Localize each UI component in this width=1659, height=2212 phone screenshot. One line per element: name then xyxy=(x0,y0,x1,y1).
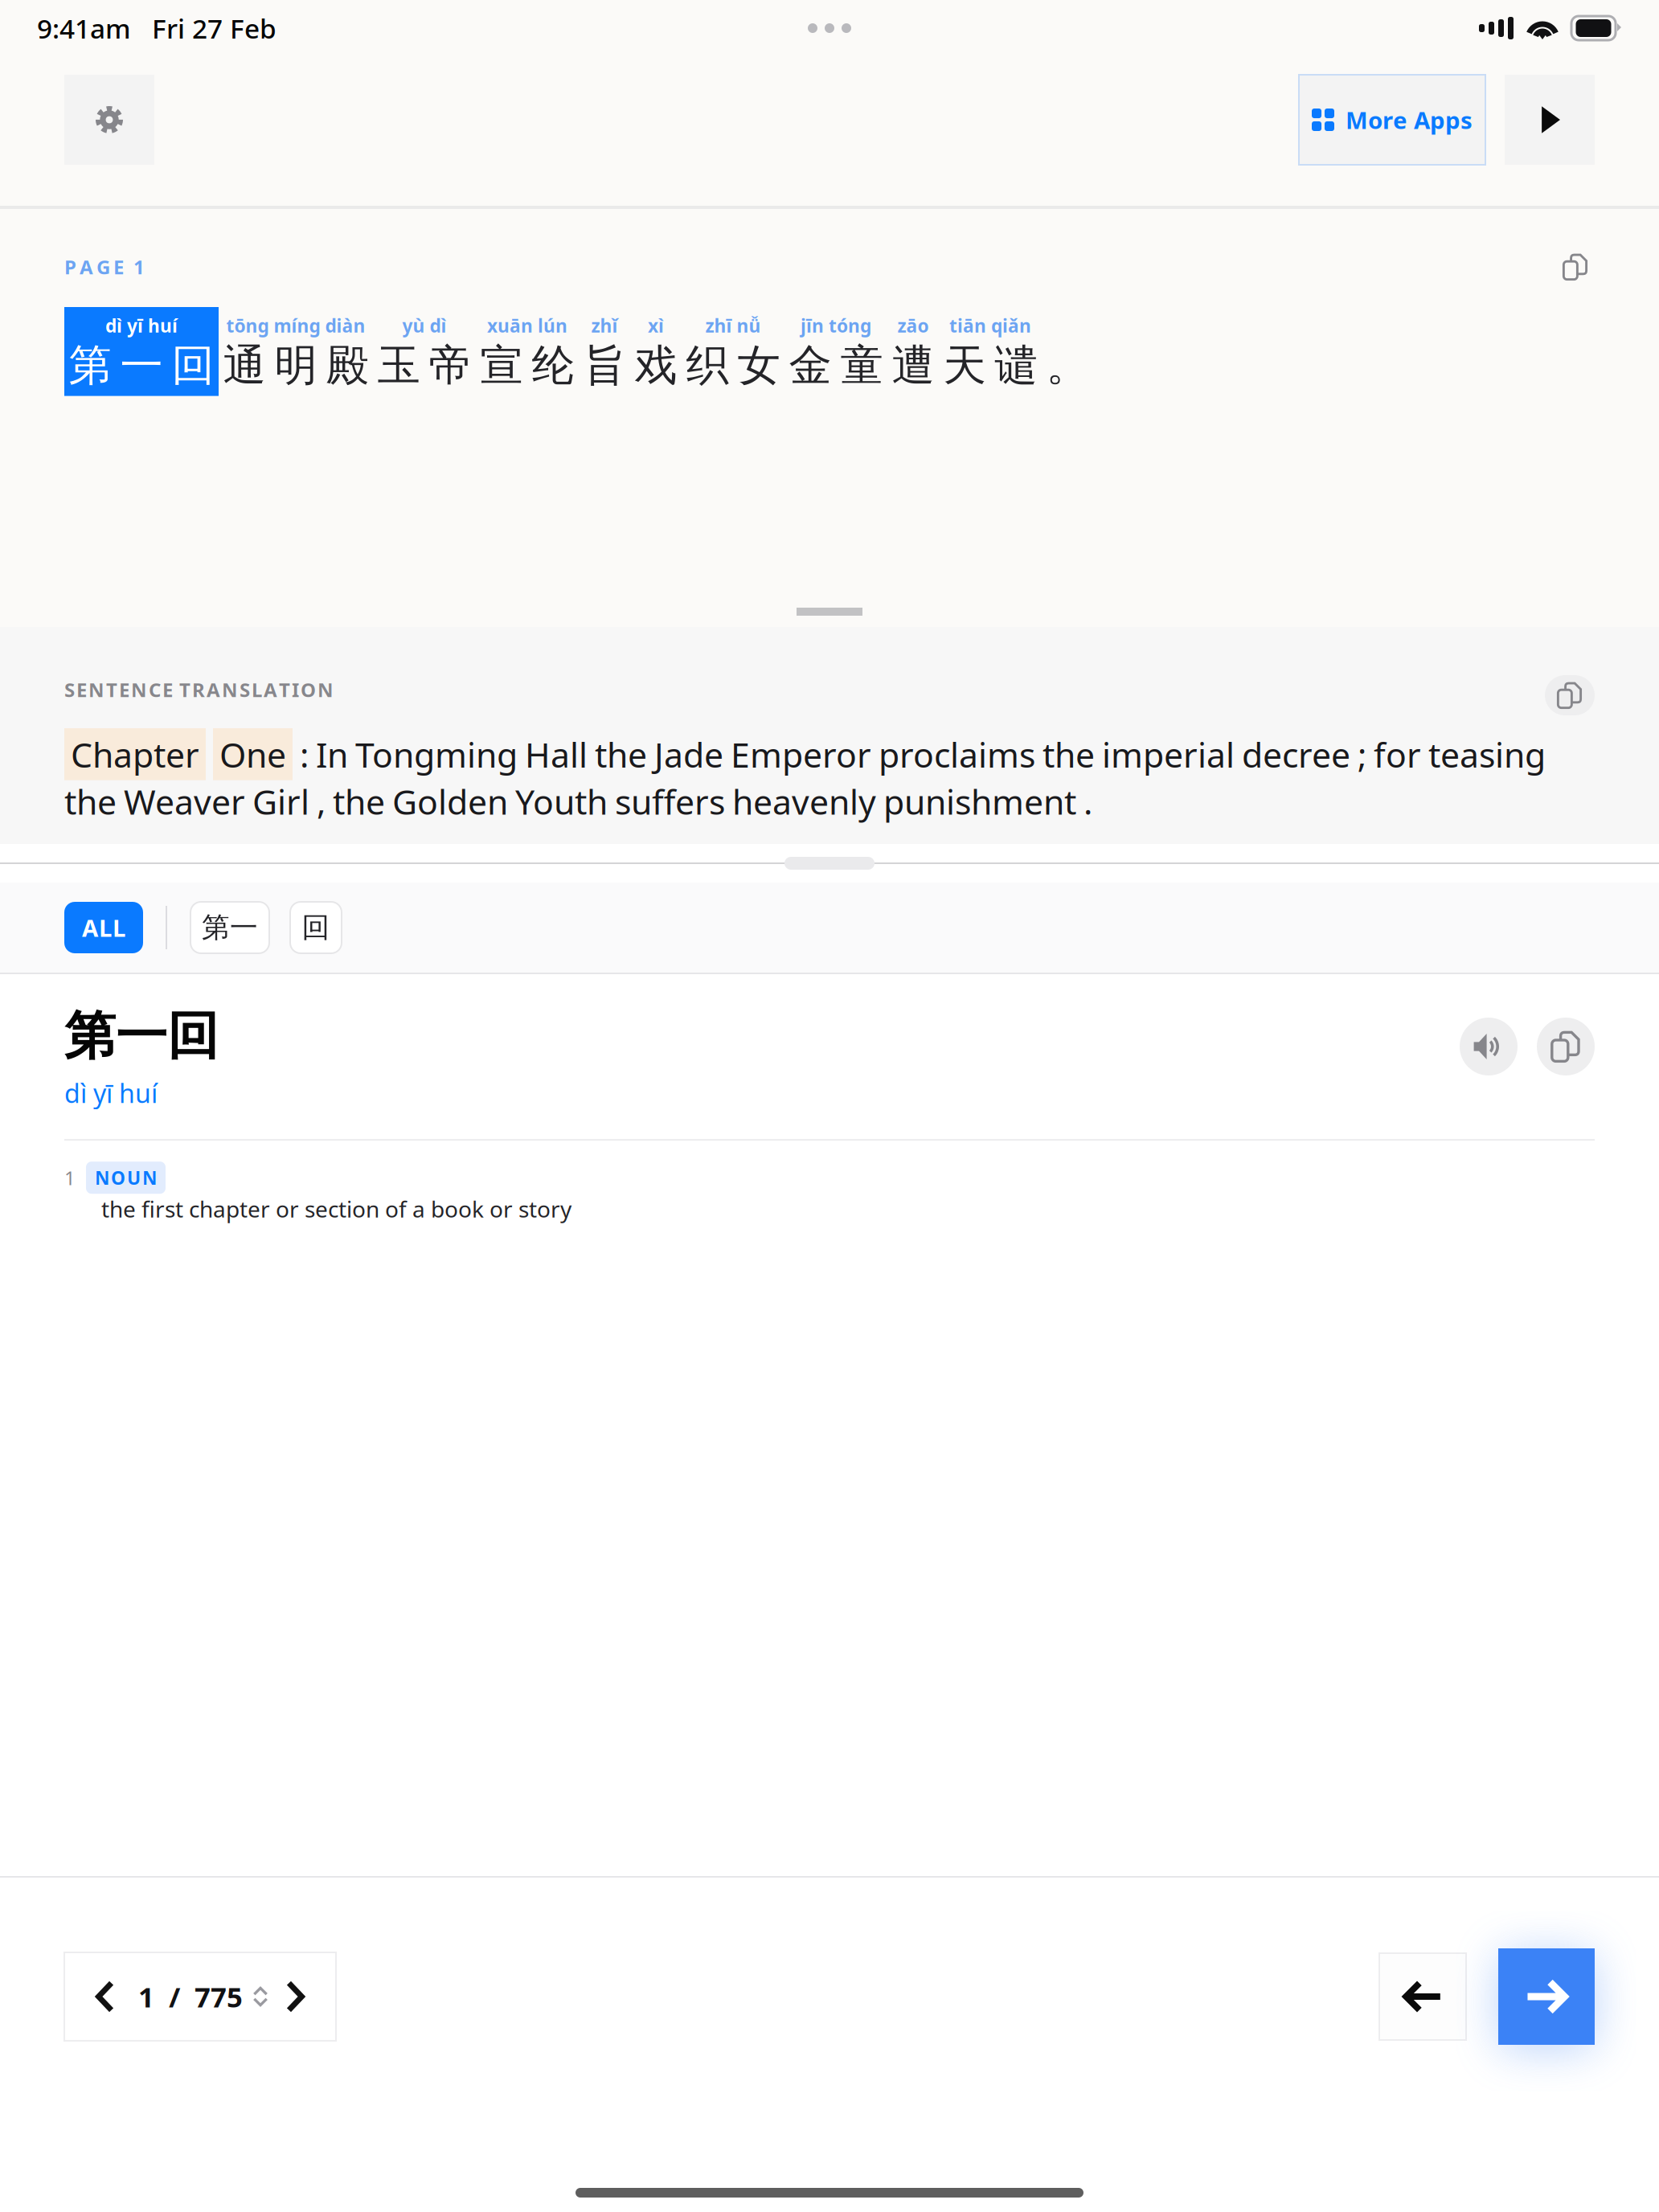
staticText: 一 xyxy=(120,339,163,392)
staticText: 宣 xyxy=(480,339,523,392)
button[interactable]: Next page xyxy=(270,1972,320,2022)
staticText: the xyxy=(333,779,385,824)
staticText: 金 xyxy=(789,339,832,392)
staticText: In xyxy=(316,731,348,777)
staticText: Girl xyxy=(252,779,309,824)
staticText: zhǐ xyxy=(591,313,618,338)
staticText: 1 / 775 xyxy=(138,1978,243,2015)
staticText: N O U N xyxy=(95,1166,157,1190)
staticText: 织 xyxy=(686,339,729,392)
staticText: 1 xyxy=(64,1165,76,1190)
staticText: 明 xyxy=(274,339,317,392)
staticText: Hall xyxy=(525,731,588,777)
staticText: 童 xyxy=(840,339,883,392)
staticText: Weaver xyxy=(124,779,245,824)
staticText: Golden xyxy=(392,779,508,824)
staticText: dì yī huí xyxy=(105,313,178,338)
staticText: jīn tóng xyxy=(801,313,871,338)
staticText: ; xyxy=(1358,731,1366,777)
staticText: , xyxy=(317,779,326,824)
staticText: 女 xyxy=(737,339,780,392)
button[interactable]: ALL xyxy=(64,902,143,953)
staticText: suffers xyxy=(615,779,725,824)
staticText: P A G E 1 xyxy=(64,254,145,280)
staticText: 9:41am xyxy=(37,10,131,46)
staticText: Jade xyxy=(654,731,723,777)
staticText: Youth xyxy=(515,779,608,824)
staticText: zāo xyxy=(897,313,929,338)
staticText: 第一回 xyxy=(64,1005,219,1068)
staticText: decree xyxy=(1242,731,1350,777)
staticText: punishment xyxy=(883,779,1076,824)
staticText: imperial xyxy=(1102,731,1235,777)
button[interactable]: Previous page xyxy=(80,1972,130,2022)
staticText: Tongming xyxy=(355,731,518,777)
button[interactable]: More Apps xyxy=(1299,75,1485,165)
staticText: 。 xyxy=(1046,339,1089,392)
button[interactable]: Settings xyxy=(64,75,154,165)
staticText: 通 xyxy=(223,339,266,392)
staticText: xuān lún xyxy=(487,313,567,338)
staticText: S E N T E N C E T R A N S L A T I O N xyxy=(64,677,334,703)
staticText: proclaims xyxy=(879,731,1035,777)
staticText: 帝 xyxy=(429,339,471,392)
button[interactable]: Forward xyxy=(1498,1948,1595,2045)
button[interactable]: Copy translation xyxy=(1545,664,1595,715)
staticText: zhī nǚ xyxy=(705,313,761,338)
staticText: xì xyxy=(648,313,664,338)
staticText: 遭 xyxy=(892,339,934,392)
staticText: 回 xyxy=(172,339,214,392)
staticText: teasing xyxy=(1428,731,1546,777)
button[interactable]: Play xyxy=(1485,75,1595,165)
staticText: the first chapter or section of a book o… xyxy=(101,1194,571,1224)
staticText: 谴 xyxy=(995,339,1037,392)
staticText: 第一 xyxy=(202,910,258,945)
staticText: 纶 xyxy=(532,339,574,392)
staticText: for xyxy=(1374,731,1421,777)
staticText: the xyxy=(64,779,117,824)
staticText: 玉 xyxy=(377,339,420,392)
staticText: heavenly xyxy=(732,779,876,824)
staticText: One xyxy=(219,731,286,777)
staticText: dì yī huí xyxy=(64,1076,158,1110)
staticText: Fri 27 Feb xyxy=(152,10,276,46)
button[interactable]: Play audio xyxy=(1460,1018,1518,1075)
staticText: tiān qiǎn xyxy=(949,313,1031,338)
button[interactable]: Copy word xyxy=(1537,1018,1595,1075)
staticText: 回 xyxy=(302,910,330,945)
staticText: Emperor xyxy=(731,731,871,777)
staticText: ALL xyxy=(82,912,125,943)
staticText: 旨 xyxy=(583,339,626,392)
staticText: the xyxy=(595,731,647,777)
staticText: 殿 xyxy=(326,339,369,392)
button[interactable]: Copy sentence xyxy=(1556,248,1595,286)
staticText: tōng míng diàn xyxy=(226,313,365,338)
staticText: Chapter xyxy=(71,731,199,777)
staticText: 戏 xyxy=(635,339,677,392)
staticText: the xyxy=(1043,731,1095,777)
staticText: 第 xyxy=(69,339,111,392)
staticText: 天 xyxy=(943,339,986,392)
staticText: yù dì xyxy=(402,313,446,338)
staticText: More Apps xyxy=(1346,104,1473,135)
staticText: . xyxy=(1083,779,1092,824)
button[interactable]: 回 xyxy=(290,902,342,953)
staticText: : xyxy=(300,731,309,777)
button[interactable]: 第一 xyxy=(190,902,269,953)
button[interactable]: Back xyxy=(1379,1953,1466,2040)
